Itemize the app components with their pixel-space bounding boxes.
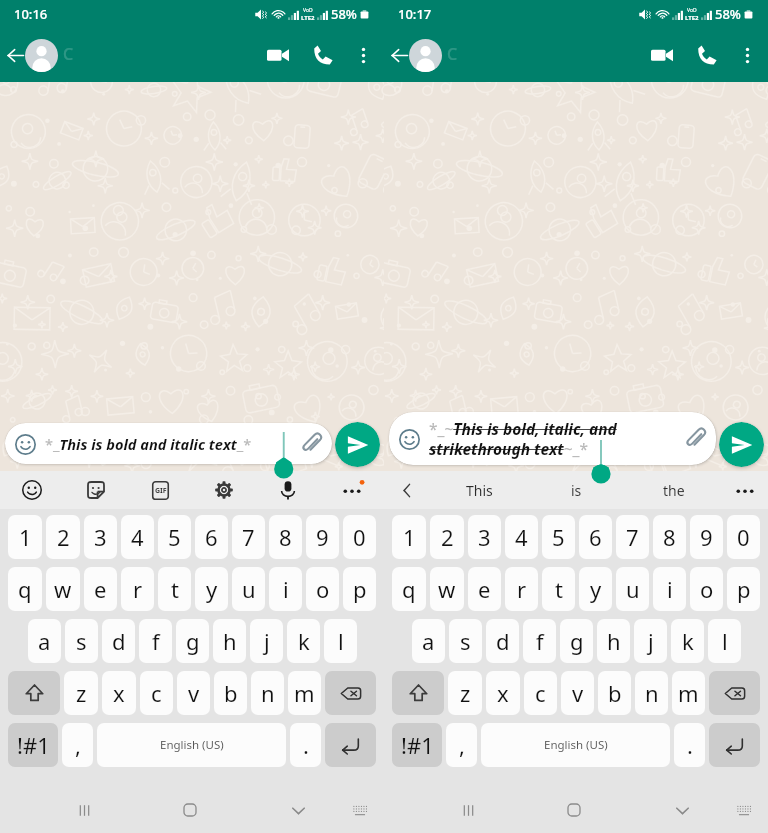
button[interactable]: r: [505, 567, 538, 611]
button[interactable]: q: [392, 567, 426, 611]
button[interactable]: Home: [168, 788, 212, 832]
button[interactable]: d: [486, 619, 519, 663]
button[interactable]: Emoji: [396, 426, 422, 452]
button[interactable]: More: [722, 471, 768, 509]
button[interactable]: Video call: [644, 37, 680, 73]
button[interactable]: v: [561, 671, 594, 715]
button[interactable]: Backspace: [709, 671, 760, 715]
button[interactable]: 7: [232, 515, 265, 559]
button[interactable]: is: [528, 471, 625, 509]
button[interactable]: 8: [653, 515, 686, 559]
button[interactable]: Emoji: [5, 423, 332, 464]
button[interactable]: c: [524, 671, 557, 715]
button[interactable]: GIF: [128, 471, 192, 509]
button[interactable]: Home: [552, 788, 596, 832]
button[interactable]: r: [121, 567, 154, 611]
button[interactable]: Voice call: [689, 37, 725, 73]
button[interactable]: i: [653, 567, 686, 611]
button[interactable]: j: [250, 619, 283, 663]
button[interactable]: 3: [468, 515, 501, 559]
button[interactable]: Emoji: [12, 431, 38, 457]
button[interactable]: Stickers: [64, 471, 128, 509]
button[interactable]: Settings: [192, 471, 256, 509]
button[interactable]: d: [102, 619, 135, 663]
button[interactable]: Change keyboard: [724, 790, 764, 830]
button[interactable]: n: [635, 671, 668, 715]
button[interactable]: English (US): [97, 723, 286, 767]
button[interactable]: o: [690, 567, 723, 611]
button[interactable]: x: [486, 671, 520, 715]
button[interactable]: n: [251, 671, 284, 715]
button[interactable]: Video call: [260, 37, 296, 73]
button[interactable]: [409, 39, 442, 72]
button[interactable]: u: [616, 567, 649, 611]
button[interactable]: Emoji: [389, 412, 716, 465]
button[interactable]: More options: [731, 39, 763, 71]
button[interactable]: e: [84, 567, 117, 611]
button[interactable]: 7: [616, 515, 649, 559]
button[interactable]: 2: [430, 515, 464, 559]
button[interactable]: Shift: [392, 671, 444, 715]
button[interactable]: 5: [542, 515, 575, 559]
button[interactable]: w: [46, 567, 80, 611]
button[interactable]: 1: [392, 515, 426, 559]
button[interactable]: e: [468, 567, 501, 611]
button[interactable]: Send: [335, 422, 380, 467]
button[interactable]: m: [288, 671, 321, 715]
button[interactable]: h: [597, 619, 630, 663]
button[interactable]: t: [542, 567, 575, 611]
button[interactable]: !#1: [392, 723, 442, 767]
button[interactable]: the: [625, 471, 722, 509]
button[interactable]: b: [214, 671, 247, 715]
button[interactable]: 0: [343, 515, 376, 559]
button[interactable]: Attach: [680, 423, 712, 455]
button[interactable]: 9: [306, 515, 339, 559]
button[interactable]: Back: [0, 40, 31, 71]
button[interactable]: Previous: [384, 471, 430, 509]
button[interactable]: !#1: [8, 723, 58, 767]
button[interactable]: i: [269, 567, 302, 611]
button[interactable]: 1: [8, 515, 42, 559]
button[interactable]: Recents: [62, 788, 106, 832]
button[interactable]: 8: [269, 515, 302, 559]
button[interactable]: More: [320, 471, 384, 509]
button[interactable]: k: [671, 619, 704, 663]
button[interactable]: 5: [158, 515, 191, 559]
button[interactable]: Back: [384, 40, 415, 71]
button[interactable]: g: [560, 619, 593, 663]
button[interactable]: t: [158, 567, 191, 611]
button[interactable]: q: [8, 567, 42, 611]
button[interactable]: Recents: [446, 788, 490, 832]
button[interactable]: .: [290, 723, 321, 767]
button[interactable]: o: [306, 567, 339, 611]
button[interactable]: x: [102, 671, 136, 715]
button[interactable]: 6: [579, 515, 612, 559]
button[interactable]: Shift: [8, 671, 60, 715]
button[interactable]: l: [708, 619, 741, 663]
button[interactable]: v: [177, 671, 210, 715]
button[interactable]: a: [28, 619, 61, 663]
button[interactable]: Change keyboard: [340, 790, 380, 830]
button[interactable]: [25, 39, 58, 72]
button[interactable]: Attach: [296, 428, 328, 460]
button[interactable]: a: [412, 619, 445, 663]
button[interactable]: English (US): [481, 723, 670, 767]
button[interactable]: Hide keyboard: [276, 788, 320, 832]
button[interactable]: Hide keyboard: [660, 788, 704, 832]
button[interactable]: k: [287, 619, 320, 663]
button[interactable]: b: [598, 671, 631, 715]
button[interactable]: u: [232, 567, 265, 611]
button[interactable]: w: [430, 567, 464, 611]
button[interactable]: f: [139, 619, 172, 663]
button[interactable]: ,: [62, 723, 93, 767]
button[interactable]: 6: [195, 515, 228, 559]
button[interactable]: p: [727, 567, 760, 611]
button[interactable]: 9: [690, 515, 723, 559]
button[interactable]: f: [523, 619, 556, 663]
button[interactable]: 4: [505, 515, 538, 559]
button[interactable]: Enter: [709, 723, 760, 767]
button[interactable]: g: [176, 619, 209, 663]
button[interactable]: Voice call: [305, 37, 341, 73]
button[interactable]: y: [579, 567, 612, 611]
button[interactable]: y: [195, 567, 228, 611]
